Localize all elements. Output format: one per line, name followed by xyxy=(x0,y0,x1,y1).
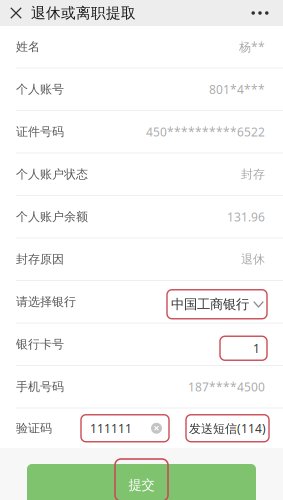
button[interactable]: 提交 xyxy=(27,464,256,500)
staticText: 封存 xyxy=(241,167,265,182)
button[interactable]: 银行卡号输入框 xyxy=(220,328,267,360)
staticText: 银行卡号 xyxy=(16,337,64,352)
staticText: 证件号码 xyxy=(16,124,64,139)
staticText: 中国工商银行 xyxy=(171,296,249,312)
staticText: 801*4*** xyxy=(209,81,265,97)
staticText: 发送短信(114) xyxy=(189,420,266,436)
staticText: 提交 xyxy=(128,477,154,493)
staticText: 131.96 xyxy=(227,209,265,225)
staticText: 姓名 xyxy=(16,39,40,54)
staticText: 111111 xyxy=(90,420,132,436)
staticText: 1 xyxy=(253,340,260,356)
staticText: 个人账号 xyxy=(16,82,64,97)
button[interactable]: 中国工商银行 xyxy=(167,285,267,319)
staticText: 封存原因 xyxy=(16,252,64,267)
staticText: 187****4500 xyxy=(188,379,265,395)
staticText: 个人账户状态 xyxy=(16,167,88,182)
button[interactable]: 验证码输入框 xyxy=(81,415,169,442)
staticText: 请选择银行 xyxy=(16,294,76,309)
staticText: 个人账户余额 xyxy=(16,209,88,224)
staticText: 退休 xyxy=(241,252,265,267)
staticText: 450**********6522 xyxy=(146,124,265,140)
staticText: 退休或离职提取 xyxy=(31,4,136,22)
staticText: 验证码 xyxy=(16,421,52,436)
staticText: 手机号码 xyxy=(16,379,64,394)
staticText: 杨** xyxy=(239,39,265,55)
button[interactable]: 发送短信(114) xyxy=(186,415,269,442)
button[interactable]: 更多 xyxy=(245,0,275,26)
button[interactable]: 关闭 xyxy=(5,0,27,26)
